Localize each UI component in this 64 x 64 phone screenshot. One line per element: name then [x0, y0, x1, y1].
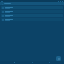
- button[interactable]: Open navigation menu: [1, 3, 3, 5]
- button[interactable]: Create new item: [56, 56, 61, 61]
- button[interactable]: [1, 6, 63, 9]
- button[interactable]: [1, 14, 63, 17]
- button[interactable]: Library: [30, 62, 35, 63]
- button[interactable]: Profile: [47, 62, 52, 63]
- button[interactable]: Home: [12, 62, 17, 63]
- button[interactable]: [1, 10, 63, 13]
- button[interactable]: [1, 18, 63, 21]
